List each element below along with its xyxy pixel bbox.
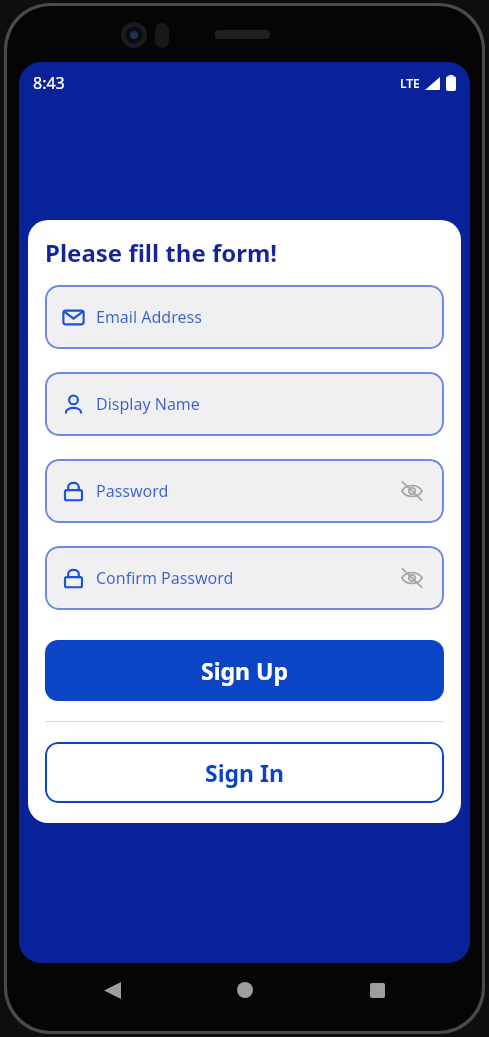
button[interactable]: Confirm Password	[45, 546, 444, 610]
button[interactable]: Back	[92, 970, 132, 1010]
staticText: LTE	[400, 75, 420, 91]
button[interactable]: Display Name	[45, 372, 444, 436]
button[interactable]: Email Address	[45, 285, 444, 349]
button[interactable]: Sign In	[45, 742, 444, 803]
button[interactable]: Show password	[397, 476, 427, 506]
button[interactable]: Recents	[357, 970, 397, 1010]
button[interactable]: Password	[45, 459, 444, 523]
button[interactable]: Home	[225, 970, 265, 1010]
staticText: Confirm Password	[96, 567, 234, 589]
button[interactable]: Show password	[397, 563, 427, 593]
staticText: Please fill the form!	[45, 236, 278, 269]
staticText: 8:43	[33, 72, 65, 94]
button[interactable]: Sign Up	[45, 640, 444, 701]
staticText: Password	[96, 480, 169, 502]
staticText: Sign Up	[201, 655, 288, 686]
staticText: Email Address	[96, 306, 202, 328]
staticText: Display Name	[96, 393, 200, 415]
staticText: Sign In	[205, 757, 284, 788]
